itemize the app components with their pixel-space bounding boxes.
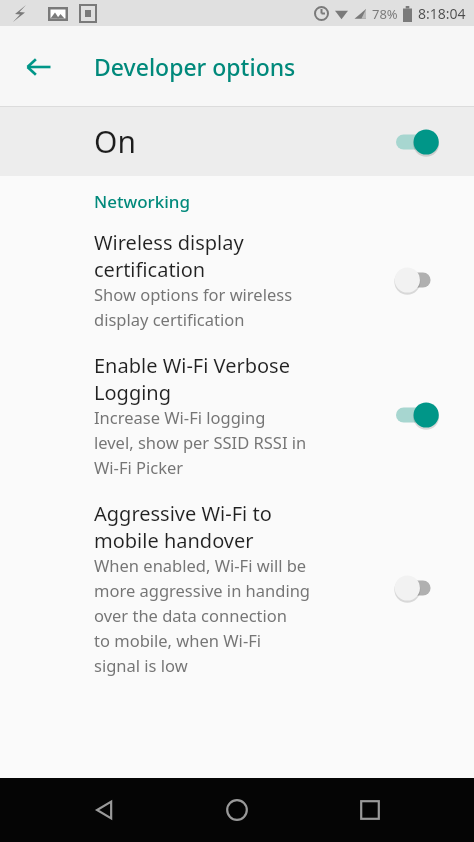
staticText: Developer options: [94, 51, 296, 82]
staticText: Enable Wi-Fi Verbose Logging: [94, 352, 290, 406]
staticText: 78%: [372, 5, 398, 23]
staticText: When enabled, Wi-Fi will be more aggress…: [94, 554, 311, 676]
staticText: Networking: [94, 190, 191, 213]
button[interactable]: On: [0, 107, 474, 176]
staticText: On: [94, 121, 136, 162]
button[interactable]: Home: [209, 782, 265, 838]
button[interactable]: Recent apps: [342, 782, 398, 838]
button[interactable]: Navigate up: [16, 44, 62, 90]
button[interactable]: Aggressive Wi-Fi to mobile handover: [0, 500, 474, 676]
button[interactable]: Enable Wi-Fi Verbose Logging: [0, 352, 474, 478]
button[interactable]: Wireless display certification: [0, 229, 474, 330]
staticText: 8:18:04: [418, 4, 466, 23]
staticText: Increase Wi-Fi logging level, show per S…: [94, 406, 307, 478]
staticText: Show options for wireless display certif…: [94, 283, 293, 330]
button[interactable]: Back: [77, 782, 133, 838]
staticText: Aggressive Wi-Fi to mobile handover: [94, 500, 272, 554]
staticText: Wireless display certification: [94, 229, 244, 283]
